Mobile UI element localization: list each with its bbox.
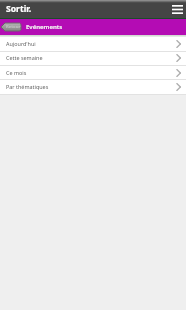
staticText: Cette semaine xyxy=(6,54,174,61)
button[interactable]: Ce mois xyxy=(0,66,186,80)
staticText: Sortir. xyxy=(6,3,32,15)
button[interactable]: Aujourd'hui xyxy=(0,37,186,51)
staticText: Retour xyxy=(6,24,21,30)
button[interactable]: Cette semaine xyxy=(0,51,186,65)
staticText: Ce mois xyxy=(6,69,174,76)
staticText: Evénements xyxy=(26,23,63,31)
button[interactable]: Retour xyxy=(1,23,21,31)
button[interactable]: Par thématiques xyxy=(0,80,186,94)
staticText: Aujourd'hui xyxy=(6,40,174,47)
staticText: Par thématiques xyxy=(6,83,174,90)
button[interactable]: Menu xyxy=(170,2,184,16)
